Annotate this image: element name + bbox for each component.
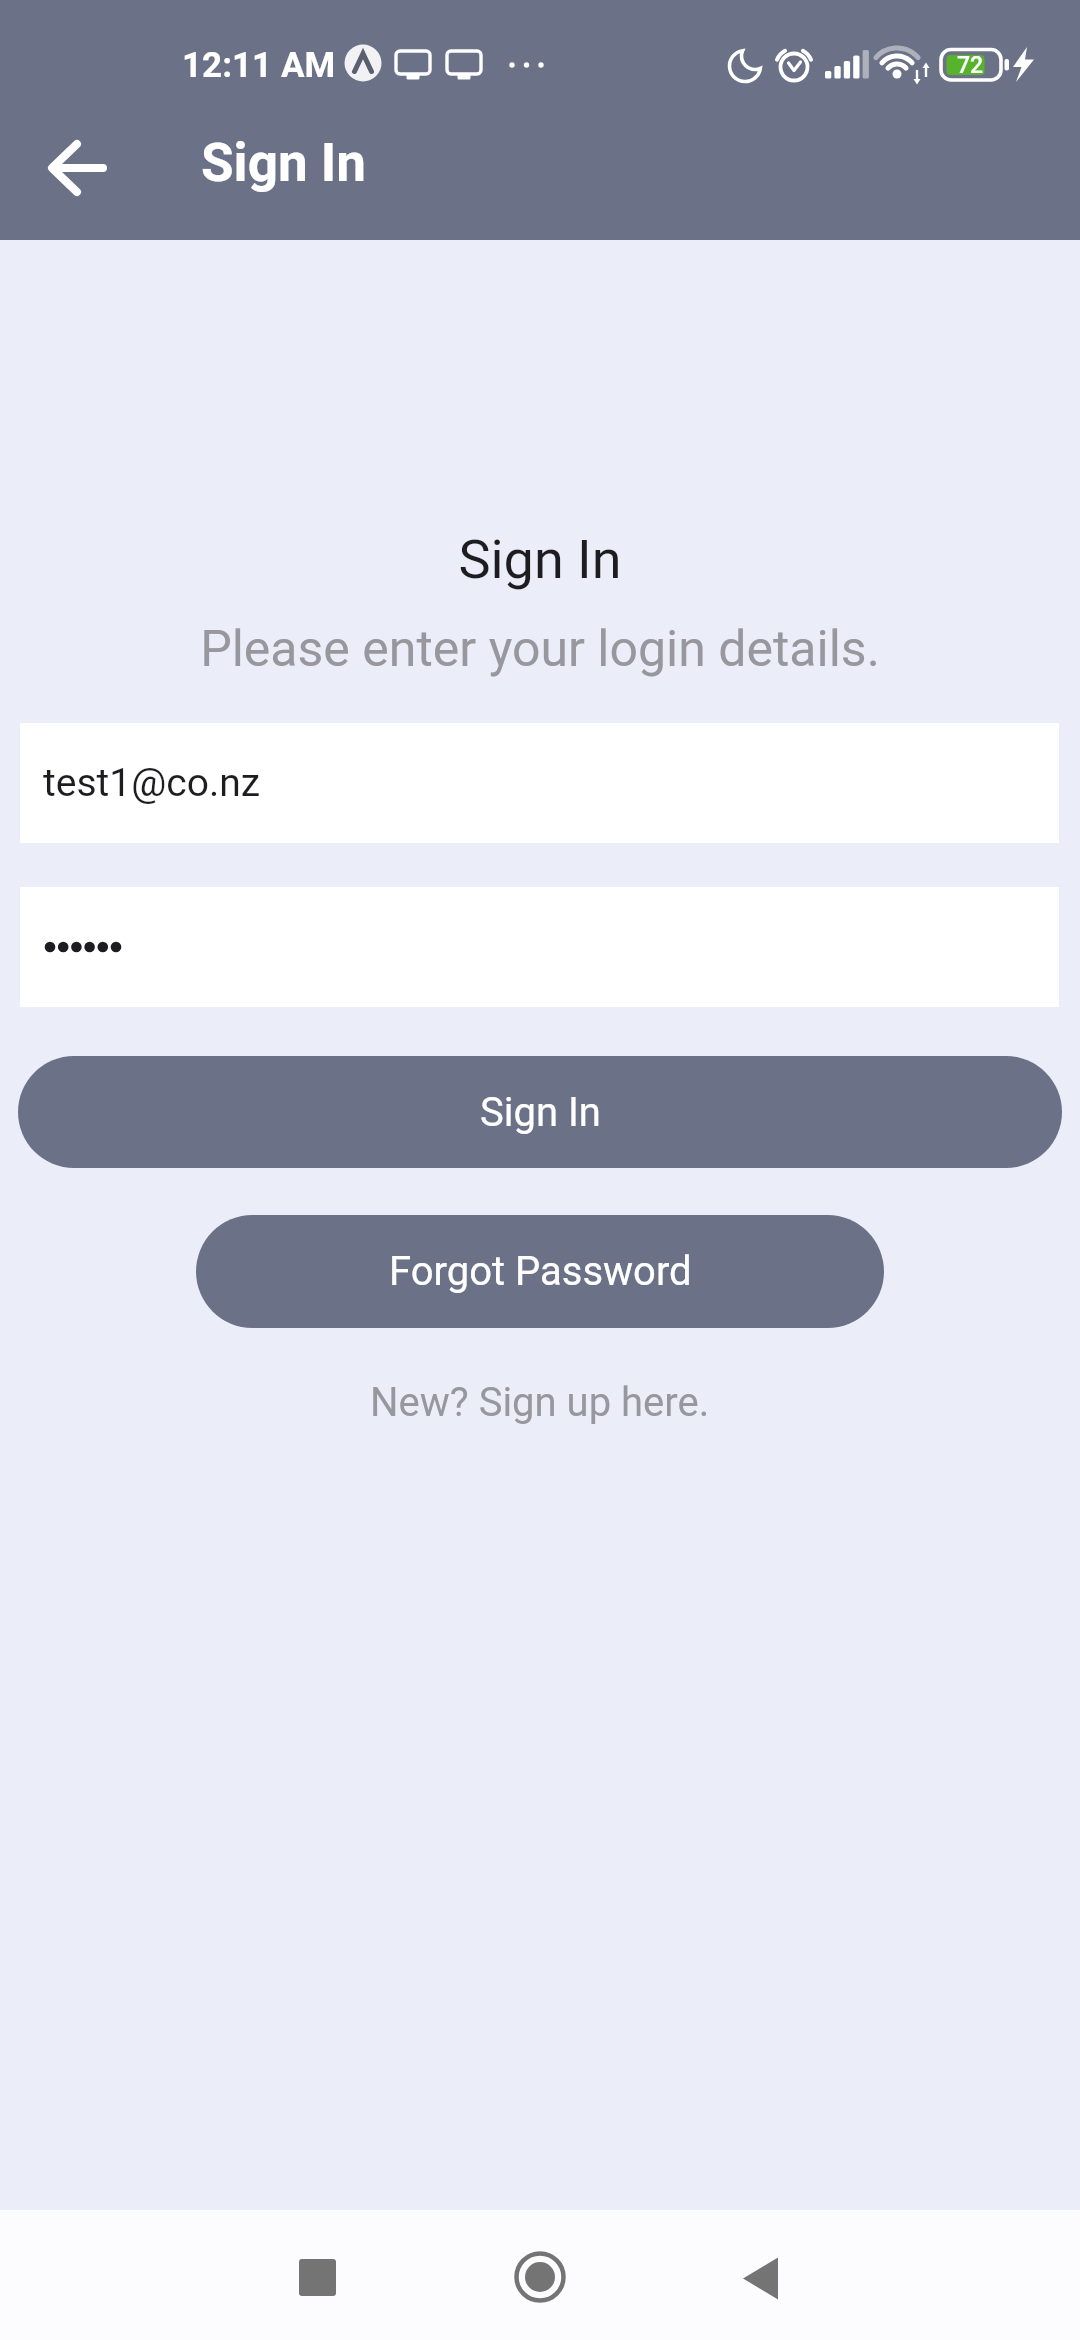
- staticText: Sign In: [0, 528, 1080, 591]
- button[interactable]: [20, 887, 1059, 1007]
- staticText: 12:11 AM: [182, 45, 336, 86]
- staticText: Please enter your login details.: [0, 620, 1080, 679]
- staticText: 72: [957, 52, 984, 79]
- staticText: Forgot Password: [389, 1248, 692, 1295]
- button[interactable]: [711, 2227, 811, 2327]
- staticText: test1@co.nz: [43, 760, 261, 806]
- button[interactable]: Forgot Password: [196, 1215, 884, 1328]
- button[interactable]: New? Sign up here.: [370, 1379, 710, 1426]
- button[interactable]: [24, 114, 132, 222]
- button[interactable]: Sign In: [18, 1056, 1062, 1168]
- staticText: Sign In: [201, 132, 366, 194]
- button[interactable]: [490, 2227, 590, 2327]
- staticText: New? Sign up here.: [370, 1379, 710, 1426]
- button[interactable]: test1@co.nz: [20, 723, 1059, 843]
- staticText: Sign In: [480, 1089, 601, 1136]
- button[interactable]: [267, 2227, 367, 2327]
